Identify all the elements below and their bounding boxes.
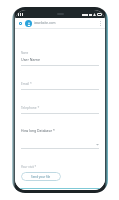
staticText: iawebsite.com: [34, 21, 56, 25]
button[interactable]: Name: [21, 51, 99, 66]
button[interactable]: Send your file: [21, 172, 61, 181]
button[interactable]: Email *: [21, 82, 99, 90]
staticText: Telephone *: [21, 106, 40, 110]
button[interactable]: Tabs: [18, 21, 22, 25]
button[interactable]: Telephone *: [21, 106, 99, 114]
staticText: Email *: [21, 82, 32, 86]
staticText: Name: [21, 51, 29, 55]
button[interactable]: Select option: [21, 143, 99, 149]
staticText: User Name: [21, 57, 40, 62]
button[interactable]: Site logo: [25, 20, 32, 27]
staticText: Your visit *: [21, 165, 37, 169]
button[interactable]: More options: [99, 21, 102, 26]
staticText: Send your file: [31, 175, 51, 179]
button[interactable]: Tabs: [15, 18, 105, 28]
staticText: How long Database *: [21, 128, 55, 133]
